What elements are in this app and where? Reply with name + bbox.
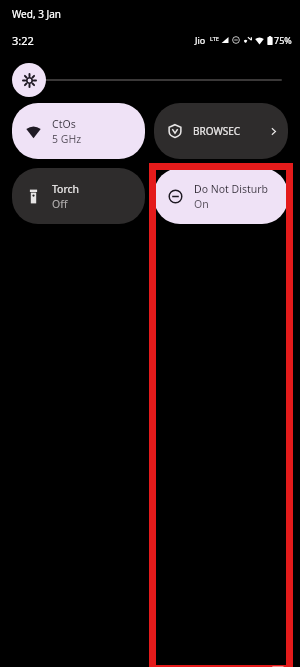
staticText: On — [194, 197, 209, 211]
staticText: BROWSEC — [193, 124, 241, 138]
staticText: 5 GHz — [52, 132, 82, 146]
staticText: LTE — [210, 35, 219, 42]
button[interactable]: Brightness slider — [12, 62, 288, 98]
staticText: Jio — [195, 34, 206, 46]
staticText: Do Not Disturb — [194, 182, 269, 196]
button[interactable]: Browsec VPN — [154, 103, 288, 159]
staticText: 75% — [274, 34, 292, 46]
button[interactable]: Torch Off — [12, 168, 145, 224]
button[interactable]: Wi-Fi CtOs 5 GHz — [12, 103, 145, 159]
staticText: CtOs — [52, 117, 76, 131]
staticText: Wed, 3 Jan — [12, 7, 62, 21]
staticText: Torch — [52, 182, 80, 196]
staticText: Off — [52, 197, 68, 211]
button[interactable]: Do Not Disturb On — [154, 168, 288, 224]
staticText: 3:22 — [12, 33, 34, 48]
